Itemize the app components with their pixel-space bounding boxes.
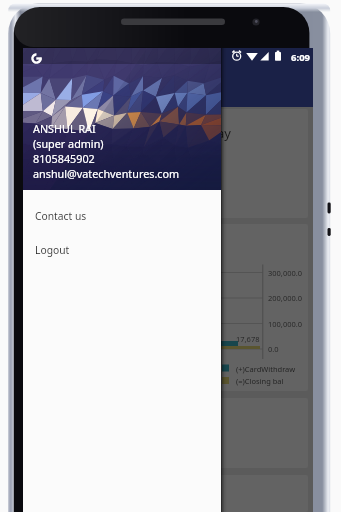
- staticText: 0.0: [268, 344, 279, 354]
- staticText: (+)CardWithdraw: [236, 364, 296, 374]
- staticText: vaTech Pay: [65, 78, 132, 96]
- staticText: 8105845902: [33, 151, 95, 166]
- staticText: 6:09: [23, 51, 310, 64]
- staticText: 100,000.0: [268, 319, 303, 329]
- staticText: Contact us: [35, 209, 87, 223]
- staticText: (super admin): [33, 136, 104, 151]
- button[interactable]: Logout: [23, 233, 221, 267]
- button[interactable]: Contact us: [23, 199, 221, 233]
- staticText: 17,678: [236, 334, 260, 344]
- staticText: anshul@vatechventures.com: [33, 166, 180, 181]
- other: Google: [31, 53, 42, 64]
- staticText: ANSHUL RAI: [33, 121, 96, 136]
- staticText: (=)Closing bal: [236, 376, 284, 386]
- staticText: 300,000.0: [268, 268, 303, 278]
- staticText: 200,000.0: [268, 293, 303, 303]
- staticText: vaTech Pay: [164, 124, 231, 142]
- staticText: Logout: [35, 243, 70, 257]
